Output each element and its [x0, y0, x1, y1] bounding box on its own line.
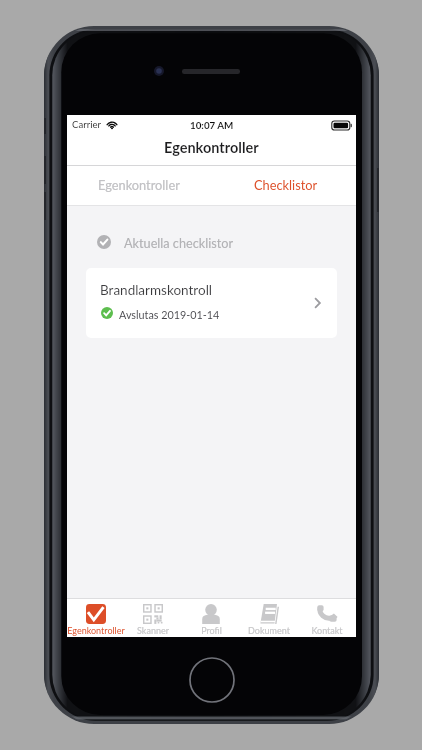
staticText: Checklistor — [254, 177, 318, 192]
staticText: Aktuella checklistor — [124, 235, 234, 249]
staticText: Egenkontroller — [98, 177, 180, 192]
staticText: 10:07 AM — [190, 119, 234, 131]
button[interactable]: Egenkontroller — [67, 598, 124, 637]
button[interactable]: Profil — [182, 598, 240, 637]
button[interactable]: Checklistor — [211, 166, 356, 205]
button[interactable]: Dokument — [240, 598, 298, 637]
button[interactable]: Skanner — [124, 598, 182, 637]
button[interactable]: Egenkontroller — [67, 166, 211, 205]
staticText: Brandlarmskontroll — [100, 282, 213, 298]
staticText: Profil — [201, 625, 222, 636]
button[interactable]: Brandlarmskontroll — [86, 268, 337, 338]
staticText: Dokument — [248, 625, 290, 636]
staticText: Egenkontroller — [164, 139, 259, 156]
staticText: Egenkontroller — [67, 625, 125, 636]
staticText: Kontakt — [311, 625, 343, 636]
staticText: Avslutas 2019-01-14 — [119, 308, 220, 321]
staticText: Carrier — [72, 119, 102, 131]
staticText: Skanner — [137, 625, 169, 636]
button[interactable]: Kontakt — [298, 598, 356, 637]
